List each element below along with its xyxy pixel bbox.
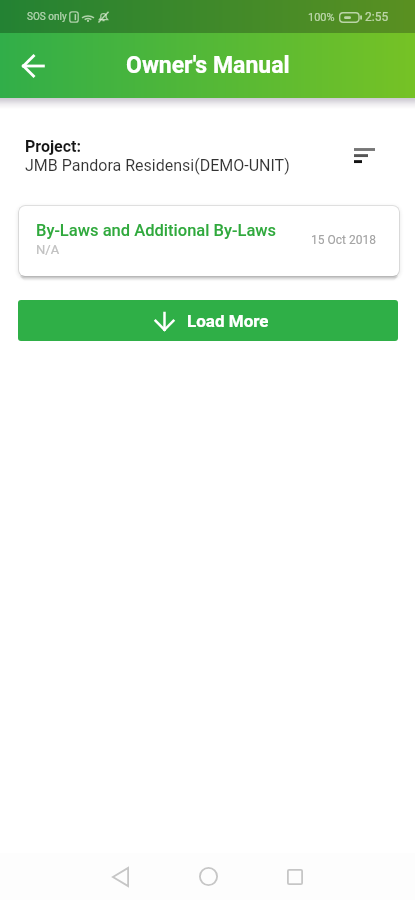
staticText: N/A [36, 242, 60, 257]
button[interactable]: Home [184, 853, 232, 900]
button[interactable]: Load More [18, 300, 398, 341]
staticText: By-Laws and Additional By-Laws [36, 221, 277, 240]
button[interactable]: Back [96, 853, 144, 900]
button[interactable]: Sort [344, 135, 384, 175]
button[interactable]: Recents [271, 853, 319, 900]
button[interactable]: Back [13, 46, 53, 86]
staticText: JMB Pandora Residensi(DEMO-UNIT) [25, 156, 290, 175]
staticText: 15 Oct 2018 [311, 233, 376, 247]
staticText: Load More [187, 311, 269, 331]
button[interactable]: By-Laws and Additional By-Laws [19, 206, 399, 276]
staticText: Owner's Manual [126, 52, 290, 79]
staticText: 100% [308, 11, 335, 24]
staticText: Project: [25, 137, 82, 156]
staticText: 2:55 [365, 10, 389, 24]
staticText: SOS only [27, 11, 67, 23]
